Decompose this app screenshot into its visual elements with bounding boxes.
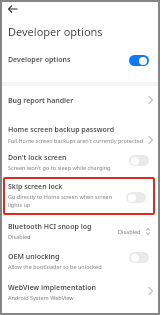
- staticText: Developer options: [8, 24, 103, 39]
- button[interactable]: OEM unlocking: [0, 247, 160, 275]
- button[interactable]: [129, 55, 149, 66]
- staticText: Bluetooth HCI snoop log: [8, 222, 92, 232]
- button[interactable]: [129, 155, 149, 166]
- button[interactable]: [129, 252, 149, 263]
- staticText: Home screen backup password: [8, 125, 115, 135]
- button[interactable]: Bug report handler: [0, 89, 160, 111]
- button[interactable]: Home screen backup password: [0, 120, 160, 149]
- staticText: Skip screen lock: [8, 182, 63, 192]
- staticText: WebView implementation: [8, 283, 96, 293]
- staticText: OEM unlocking: [8, 252, 60, 262]
- staticText: Bug report handler: [8, 96, 74, 106]
- staticText: Go directly to Home screen when screen: [8, 193, 113, 200]
- button[interactable]: Don't lock screen: [0, 149, 160, 176]
- button[interactable]: [126, 192, 146, 203]
- staticText: Disabled: [118, 228, 141, 235]
- staticText: Full Home screen backups aren't currentl…: [8, 137, 143, 144]
- staticText: Don't lock screen: [8, 153, 67, 163]
- button[interactable]: WebView implementation: [0, 278, 160, 308]
- button[interactable]: Developer options: [0, 48, 160, 74]
- staticText: Android System WebView: [8, 294, 74, 301]
- staticText: lights up: [8, 201, 31, 208]
- button[interactable]: Skip screen lock: [0, 178, 160, 214]
- button[interactable]: [4, 1, 22, 17]
- staticText: Screen won't go to sleep while charging: [8, 164, 111, 171]
- staticText: Disabled: [8, 233, 31, 240]
- button[interactable]: Bluetooth HCI snoop log: [0, 218, 160, 246]
- staticText: Allow the bootloader to be unlocked: [8, 263, 102, 270]
- staticText: Developer options: [8, 55, 71, 65]
